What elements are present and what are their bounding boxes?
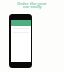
staticText: car easily (23, 4, 42, 9)
staticText: Order the your (17, 1, 47, 6)
